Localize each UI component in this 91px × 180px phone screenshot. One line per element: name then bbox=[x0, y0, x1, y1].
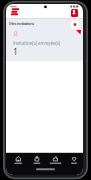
button[interactable] bbox=[27, 153, 46, 170]
staticText: Mes invitations bbox=[9, 21, 34, 27]
button[interactable] bbox=[71, 9, 78, 17]
button[interactable] bbox=[6, 30, 83, 61]
button[interactable] bbox=[64, 153, 83, 170]
staticText: invitation(s) envoyée(s) bbox=[13, 40, 61, 46]
staticText: 1 bbox=[13, 45, 19, 57]
button[interactable] bbox=[71, 21, 79, 29]
button[interactable] bbox=[8, 153, 27, 170]
button[interactable] bbox=[46, 153, 65, 170]
